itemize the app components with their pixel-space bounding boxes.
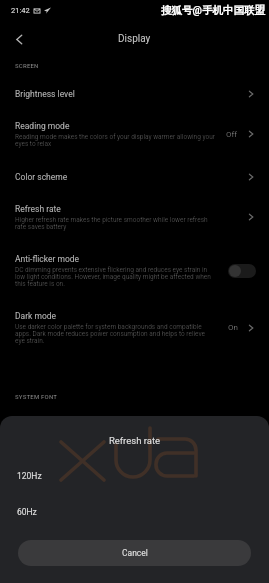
staticText: Color scheme <box>15 172 68 182</box>
staticText: Reading mode makes the colors of your di… <box>15 133 215 147</box>
button[interactable]: Anti-flicker mode <box>0 254 269 287</box>
staticText: Brightness level <box>15 89 75 99</box>
button[interactable]: Brightness level <box>0 89 269 99</box>
staticText: On <box>228 323 238 332</box>
button[interactable]: 120Hz <box>0 470 269 481</box>
button[interactable]: Back <box>6 26 32 52</box>
staticText: Dark mode <box>15 311 57 321</box>
staticText: 120Hz <box>17 471 42 481</box>
staticText: Display <box>118 33 151 45</box>
staticText: Off <box>226 130 238 139</box>
staticText: 60Hz <box>17 507 37 517</box>
staticText: 21:42 <box>11 6 30 15</box>
button[interactable]: 60Hz <box>0 506 269 517</box>
staticText: Cancel <box>122 548 148 558</box>
staticText: 搜狐号@手机中国联盟 <box>161 4 265 17</box>
staticText: DC dimming prevents extensive flickering… <box>15 266 215 287</box>
button[interactable]: Color scheme <box>0 172 269 182</box>
staticText: Use darker color palette for system back… <box>15 323 215 344</box>
button[interactable]: Cancel <box>18 540 251 566</box>
staticText: SCREEN <box>15 62 39 69</box>
staticText: Higher refresh rate makes the picture sm… <box>15 216 220 230</box>
staticText: SYSTEM FONT <box>15 393 58 400</box>
button[interactable]: Refresh rate <box>0 204 269 230</box>
button[interactable]: Reading mode <box>0 121 269 147</box>
staticText: Refresh rate <box>0 435 269 446</box>
staticText: Refresh rate <box>15 204 61 214</box>
staticText: Reading mode <box>15 121 70 131</box>
staticText: Anti-flicker mode <box>15 254 80 264</box>
button[interactable]: Dark mode <box>0 311 269 344</box>
